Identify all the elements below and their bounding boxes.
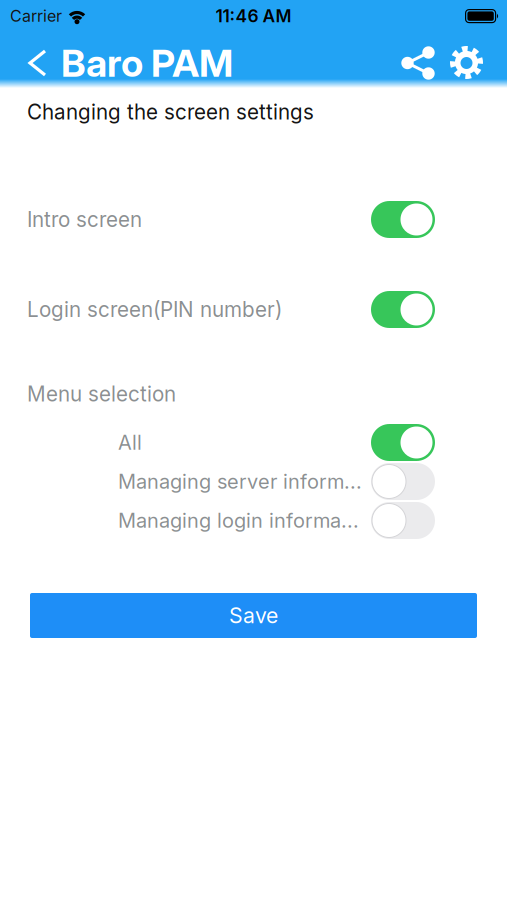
staticText: Managing login informa...: [118, 508, 359, 533]
staticText: Carrier: [10, 6, 62, 26]
button[interactable]: Share: [401, 47, 435, 79]
staticText: Changing the screen settings: [27, 99, 314, 124]
staticText: All: [118, 430, 142, 455]
staticText: Intro screen: [27, 207, 142, 232]
staticText: 11:46 AM: [215, 5, 291, 26]
button[interactable]: Settings: [435, 46, 507, 79]
staticText: Baro PAM: [61, 40, 233, 86]
staticText: Login screen(PIN number): [27, 297, 282, 322]
button[interactable]: Managing server inform...: [371, 463, 435, 500]
button[interactable]: Login screen(PIN number): [371, 291, 435, 328]
button[interactable]: All: [371, 424, 435, 461]
staticText: Managing server inform...: [118, 469, 362, 494]
staticText: Menu selection: [27, 381, 176, 406]
button[interactable]: Intro screen: [371, 201, 435, 238]
button[interactable]: Save: [30, 593, 477, 638]
staticText: Save: [229, 603, 278, 628]
button[interactable]: Back: [0, 48, 48, 78]
button[interactable]: Managing login informa...: [371, 502, 435, 539]
